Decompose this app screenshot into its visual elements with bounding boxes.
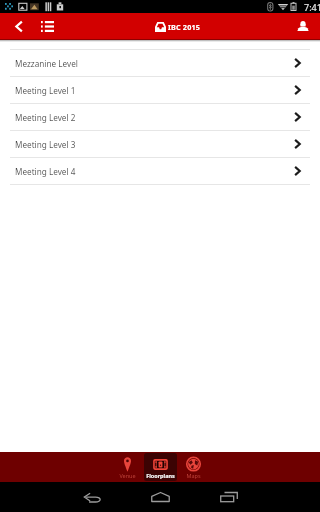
button[interactable]: Recent apps <box>207 482 251 512</box>
button[interactable]: Account <box>292 13 320 40</box>
button[interactable]: Floorplans <box>144 453 177 481</box>
button[interactable]: Meeting Level 3 <box>0 131 320 157</box>
staticText: IBC 2015 <box>168 22 201 32</box>
button[interactable]: Mezzanine Level <box>0 50 320 76</box>
button[interactable]: Venue <box>111 453 144 481</box>
staticText: Meeting Level 2 <box>15 112 76 123</box>
staticText: Meeting Level 1 <box>15 85 76 96</box>
staticText: Venue <box>119 472 136 479</box>
staticText: Meeting Level 3 <box>15 139 76 150</box>
button[interactable]: List view <box>35 13 59 40</box>
staticText: Floorplans <box>146 472 175 479</box>
button[interactable]: Maps <box>177 453 210 481</box>
staticText: Maps <box>186 472 201 479</box>
button[interactable]: Back <box>5 13 32 40</box>
button[interactable]: Meeting Level 2 <box>0 104 320 130</box>
button[interactable]: Back <box>70 482 114 512</box>
button[interactable]: Meeting Level 4 <box>0 158 320 184</box>
staticText: 7:41 <box>304 1 320 13</box>
button[interactable]: Home <box>138 482 182 512</box>
staticText: Mezzanine Level <box>15 58 78 69</box>
staticText: Meeting Level 4 <box>15 166 76 177</box>
button[interactable]: Meeting Level 1 <box>0 77 320 103</box>
